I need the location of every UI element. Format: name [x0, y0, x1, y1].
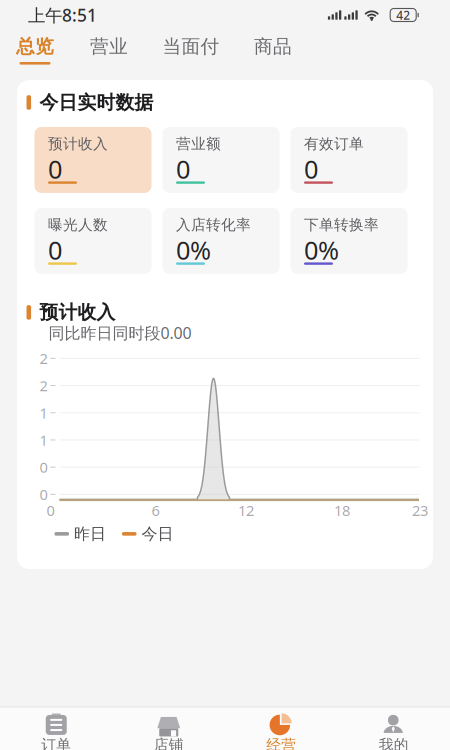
button[interactable]: 商品	[234, 38, 312, 72]
button[interactable]: 有效订单	[290, 127, 407, 193]
button[interactable]: 订单	[0, 707, 112, 750]
staticText: 0	[304, 152, 318, 186]
staticText: 18	[334, 501, 350, 520]
staticText: 总览	[16, 35, 54, 58]
staticText: 1	[39, 403, 47, 422]
staticText: 上午8:51	[28, 3, 97, 26]
button[interactable]: 营业	[70, 38, 148, 72]
staticText: 23	[412, 501, 428, 520]
button[interactable]: 当面付	[148, 38, 234, 72]
staticText: 0	[48, 233, 62, 267]
button[interactable]: 营业额	[162, 127, 279, 193]
staticText: 入店转化率	[176, 216, 251, 234]
button[interactable]: 店铺	[112, 707, 225, 750]
button[interactable]: 预计收入	[34, 127, 151, 193]
button[interactable]: 我的	[337, 707, 450, 750]
staticText: 12	[238, 501, 254, 520]
staticText: 我的	[379, 736, 409, 750]
staticText: 0	[46, 501, 54, 520]
staticText: 今日	[141, 524, 173, 544]
staticText: 0%	[304, 233, 339, 267]
button[interactable]: 入店转化率	[162, 208, 279, 274]
staticText: 昨日	[74, 524, 106, 544]
staticText: 订单	[41, 736, 71, 750]
staticText: 下单转换率	[304, 216, 379, 234]
staticText: 曝光人数	[48, 216, 108, 234]
staticText: 0	[39, 457, 47, 477]
button[interactable]: 曝光人数	[34, 208, 151, 274]
staticText: 预计收入	[40, 301, 116, 324]
staticText: 0%	[176, 233, 211, 267]
staticText: 当面付	[162, 35, 219, 58]
staticText: 同比昨日同时段0.00	[48, 322, 191, 343]
staticText: 0	[176, 152, 190, 186]
staticText: 今日实时数据	[40, 91, 154, 114]
staticText: 2	[39, 349, 47, 368]
staticText: 预计收入	[48, 135, 108, 153]
staticText: 商品	[254, 35, 292, 58]
staticText: 经营	[266, 736, 296, 750]
staticText: 店铺	[154, 736, 184, 750]
button[interactable]: 总览	[0, 38, 70, 72]
staticText: 6	[151, 501, 159, 520]
staticText: 0	[39, 485, 47, 504]
staticText: 有效订单	[304, 135, 364, 153]
staticText: 0	[48, 152, 62, 186]
staticText: 营业	[90, 35, 128, 58]
button[interactable]: 经营	[225, 707, 337, 750]
staticText: 42	[396, 7, 410, 23]
staticText: 2	[39, 376, 47, 395]
staticText: 营业额	[176, 135, 221, 153]
staticText: 1	[39, 430, 47, 450]
button[interactable]: 下单转换率	[290, 208, 407, 274]
